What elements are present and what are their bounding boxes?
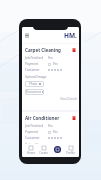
staticText: Create: [39, 151, 48, 155]
staticText: Customer Review: [25, 68, 46, 72]
button[interactable]: View Details: [60, 97, 77, 101]
staticText: Air Conditioner: [25, 115, 60, 121]
button[interactable]: Delete: [71, 47, 77, 53]
staticText: Upload Image: [25, 75, 47, 79]
staticText: Yes: [48, 124, 53, 128]
button[interactable]: Air Conditioner: [22, 112, 79, 157]
staticText: Yes: [53, 130, 58, 134]
staticText: Customer Review: [25, 136, 46, 140]
button[interactable]: Carpet Cleaning: [22, 44, 79, 110]
button[interactable]: Create: [38, 146, 49, 155]
staticText: Yes: [48, 56, 53, 60]
staticText: HM.: [64, 31, 77, 40]
button[interactable]: Add: [54, 146, 61, 153]
staticText: Payment Confirmed: [25, 62, 46, 66]
button[interactable]: Photo: [25, 81, 44, 87]
staticText: Photo: [29, 150, 38, 154]
staticText: Yes: [53, 62, 58, 66]
staticText: Upload Image: [25, 143, 47, 147]
staticText: Profile: [66, 151, 75, 155]
button[interactable]: Document: [25, 89, 44, 95]
button[interactable]: Photo: [25, 149, 44, 155]
button[interactable]: Profile: [65, 146, 76, 155]
staticText: Document: [26, 90, 41, 94]
button[interactable]: Menu: [24, 32, 30, 38]
staticText: Home: [27, 151, 35, 155]
staticText: Payment Confirmed: [25, 130, 46, 134]
staticText: Job Finished: [25, 124, 44, 128]
staticText: Photo: [29, 82, 38, 86]
staticText: Carpet Cleaning: [25, 47, 61, 53]
button[interactable]: Delete: [71, 115, 77, 121]
button[interactable]: Home: [25, 146, 36, 155]
staticText: Job Finished: [25, 56, 44, 60]
